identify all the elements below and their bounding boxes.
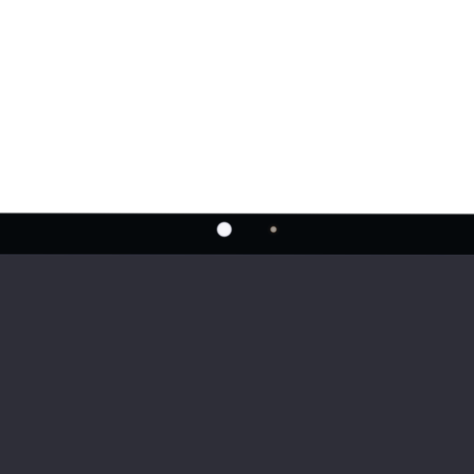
button[interactable]: Display <box>0 253 474 474</box>
button[interactable]: Front camera <box>212 217 236 241</box>
button[interactable]: Camera status indicator <box>265 220 283 238</box>
